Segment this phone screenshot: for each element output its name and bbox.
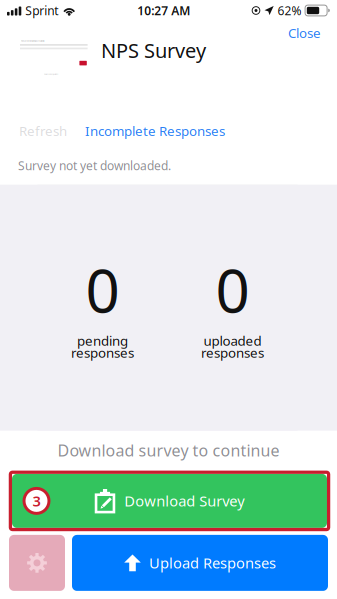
- staticText: 0: [215, 250, 249, 329]
- staticText: pending: [77, 332, 128, 349]
- button[interactable]: Incomplete Responses: [67, 117, 225, 145]
- button[interactable]: Settings: [9, 535, 65, 591]
- staticText: 62%: [278, 2, 302, 18]
- button[interactable]: Close: [272, 21, 337, 52]
- staticText: Powered by Qualtrics: [44, 73, 59, 75]
- staticText: responses: [71, 344, 134, 361]
- staticText: Incomplete Responses: [85, 122, 225, 140]
- staticText: 0: [85, 250, 119, 329]
- staticText: 3: [32, 491, 40, 511]
- button[interactable]: Refresh: [19, 117, 67, 145]
- button[interactable]: Download Survey: [0, 474, 337, 528]
- staticText: uploaded: [203, 332, 261, 349]
- staticText: Survey not yet downloaded.: [18, 158, 171, 174]
- staticText: responses: [201, 344, 264, 361]
- staticText: Download survey to continue: [57, 440, 279, 461]
- staticText: The survey design was created to: [21, 40, 45, 42]
- staticText: Download Survey: [124, 491, 244, 511]
- staticText: Sprint: [25, 2, 58, 18]
- staticText: Refresh: [19, 122, 67, 140]
- staticText: NPS Survey: [101, 37, 206, 64]
- staticText: Upload Responses: [149, 553, 276, 573]
- staticText: 10:27 AM: [137, 2, 190, 18]
- staticText: Close: [288, 24, 321, 42]
- button[interactable]: Upload Responses: [72, 535, 328, 591]
